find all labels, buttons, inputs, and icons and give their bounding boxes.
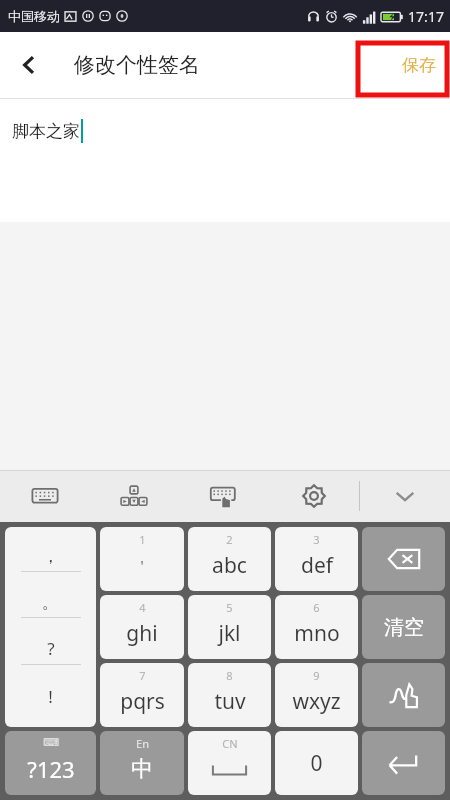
button[interactable]: ， [5,527,96,727]
button[interactable]: Arrow keys [89,470,179,522]
button[interactable]: 9 [275,663,358,727]
staticText: En [136,736,149,751]
staticText: 17:17 [408,7,444,26]
staticText: ， [42,546,59,567]
staticText: 6 [313,600,320,615]
staticText: 3 [313,532,320,547]
staticText: 5 [226,600,233,615]
button[interactable]: Space [188,731,271,795]
staticText: ghi [126,619,158,648]
button[interactable]: Back [0,32,58,98]
staticText: ? [47,637,55,660]
staticText: mno [294,619,340,648]
button[interactable]: 1 [100,527,184,591]
staticText: tuv [214,687,246,716]
button[interactable]: Backspace [362,527,445,591]
button[interactable]: 3 [275,527,358,591]
staticText: 0 [310,749,323,778]
staticText: jkl [218,619,241,648]
staticText: pqrs [120,687,165,716]
staticText: 修改个性签名 [74,52,200,78]
button[interactable]: 6 [275,595,358,659]
button[interactable]: Keyboard select [179,470,269,522]
staticText: 保存 [402,55,436,76]
staticText: CN [222,736,238,751]
button[interactable]: Settings [269,470,359,522]
button[interactable]: 0 [275,731,358,795]
staticText: 中 [131,755,153,783]
staticText: abc [212,551,247,580]
button[interactable]: 7 [100,663,184,727]
button[interactable]: Hide keyboard [360,470,450,522]
button[interactable]: 2 [188,527,271,591]
staticText: wxyz [292,687,341,716]
staticText: ?123 [27,754,75,784]
button[interactable]: Handwriting [362,663,445,727]
staticText: ! [48,685,53,708]
staticText: 中国移动 [8,8,60,24]
button[interactable]: 8 [188,663,271,727]
button[interactable]: 保存 [388,32,450,98]
staticText: 4 [139,600,146,615]
button[interactable]: En [100,731,184,795]
button[interactable]: 4 [100,595,184,659]
button[interactable]: 5 [188,595,271,659]
button[interactable]: 清空 [362,595,445,659]
staticText: 1 [139,532,146,547]
staticText: 。 [42,592,59,613]
staticText: def [301,551,333,580]
button[interactable]: Keyboard layout [0,470,89,522]
staticText: 8 [226,668,233,683]
staticText: ⌨ [43,736,59,749]
staticText: 清空 [384,615,424,640]
staticText: ' [140,556,144,575]
staticText: 9 [313,668,320,683]
staticText: 7 [139,668,146,683]
button[interactable]: Enter [362,731,445,795]
staticText: 2 [226,532,233,547]
button[interactable]: ⌨ [5,731,96,795]
staticText: 脚本之家 [12,121,80,142]
